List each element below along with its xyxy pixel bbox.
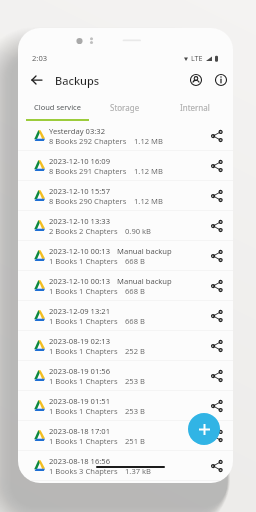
- button[interactable]: Account: [186, 70, 206, 90]
- button[interactable]: Share: [209, 278, 225, 294]
- staticText: LTE: [191, 53, 203, 63]
- button[interactable]: Share: [209, 308, 225, 324]
- staticText: 668 B: [125, 316, 145, 326]
- staticText: 0.90 kB: [125, 226, 152, 236]
- button[interactable]: Cloud service: [22, 96, 92, 121]
- button[interactable]: 2023-12-10 00:13: [18, 241, 233, 270]
- button[interactable]: Add backup: [188, 413, 220, 445]
- button[interactable]: Storage: [91, 96, 158, 121]
- staticText: 251 B: [125, 436, 145, 446]
- staticText: 1.12 MB: [134, 196, 163, 206]
- staticText: 2023-12-10 00:13: [49, 246, 111, 256]
- button[interactable]: 2023-08-18 17:01: [18, 421, 233, 450]
- button[interactable]: Share: [209, 188, 225, 204]
- staticText: 2 Books 2 Chapters: [49, 226, 118, 236]
- staticText: 1.12 MB: [134, 136, 163, 146]
- button[interactable]: Share: [209, 218, 225, 234]
- staticText: 1 Books 1 Chapters: [49, 346, 118, 356]
- button[interactable]: Share: [209, 158, 225, 174]
- button[interactable]: Share: [209, 338, 225, 354]
- staticText: 1 Books 1 Chapters: [49, 286, 118, 296]
- button[interactable]: Yesterday 03:32: [18, 121, 233, 150]
- staticText: 2023-08-19 02:13: [49, 336, 111, 346]
- button[interactable]: Internal: [161, 96, 228, 121]
- button[interactable]: 2023-12-10 16:09: [18, 151, 233, 180]
- staticText: 1 Books 1 Chapters: [49, 436, 118, 446]
- button[interactable]: Share: [209, 458, 225, 474]
- staticText: 2023-08-18 16:56: [49, 456, 111, 466]
- button[interactable]: 2023-08-19 01:51: [18, 391, 233, 420]
- staticText: 8 Books 290 Chapters: [49, 196, 127, 206]
- staticText: 668 B: [125, 256, 145, 266]
- staticText: Manual backup: [117, 276, 172, 286]
- button[interactable]: 2023-08-19 02:13: [18, 331, 233, 360]
- button[interactable]: Share: [209, 248, 225, 264]
- staticText: 2023-08-19 01:56: [49, 366, 111, 376]
- button[interactable]: Share: [209, 368, 225, 384]
- button[interactable]: Share: [209, 428, 225, 444]
- button[interactable]: 2023-12-10 13:33: [18, 211, 233, 240]
- staticText: 1.37 kB: [125, 466, 152, 476]
- button[interactable]: 2023-12-10 15:57: [18, 181, 233, 210]
- staticText: Backups: [55, 73, 100, 88]
- staticText: 1 Books 3 Chapters: [49, 466, 118, 476]
- button[interactable]: Back: [26, 69, 48, 91]
- staticText: 253 B: [125, 406, 145, 416]
- button[interactable]: Share: [209, 398, 225, 414]
- button[interactable]: Info: [211, 70, 231, 90]
- staticText: 252 B: [125, 346, 145, 356]
- staticText: 1.12 MB: [134, 166, 163, 176]
- button[interactable]: 2023-08-18 16:56: [18, 451, 233, 480]
- button[interactable]: Share: [209, 128, 225, 144]
- staticText: 8 Books 291 Chapters: [49, 166, 127, 176]
- staticText: 2023-12-10 16:09: [49, 156, 111, 166]
- staticText: 2023-08-18 17:01: [49, 426, 111, 436]
- staticText: Cloud service: [34, 102, 81, 112]
- staticText: Yesterday 03:32: [49, 126, 106, 136]
- staticText: 2023-12-10 00:13: [49, 276, 111, 286]
- staticText: 2023-12-10 13:33: [49, 216, 111, 226]
- button[interactable]: 2023-12-09 13:21: [18, 301, 233, 330]
- staticText: 2023-12-10 15:57: [49, 186, 111, 196]
- staticText: 253 B: [125, 376, 145, 386]
- staticText: 2023-12-09 13:21: [49, 306, 111, 316]
- staticText: 8 Books 292 Chapters: [49, 136, 127, 146]
- staticText: 1 Books 1 Chapters: [49, 376, 118, 386]
- staticText: Storage: [110, 102, 140, 113]
- staticText: 1 Books 1 Chapters: [49, 406, 118, 416]
- staticText: 668 B: [125, 286, 145, 296]
- staticText: Internal: [180, 102, 210, 113]
- staticText: 2023-08-19 01:51: [49, 396, 111, 406]
- button[interactable]: 2023-08-19 01:56: [18, 361, 233, 390]
- button[interactable]: 2023-12-10 00:13: [18, 271, 233, 300]
- staticText: 2:03: [32, 53, 48, 63]
- staticText: 1 Books 1 Chapters: [49, 256, 118, 266]
- staticText: Manual backup: [117, 246, 172, 256]
- staticText: 1 Books 1 Chapters: [49, 316, 118, 326]
